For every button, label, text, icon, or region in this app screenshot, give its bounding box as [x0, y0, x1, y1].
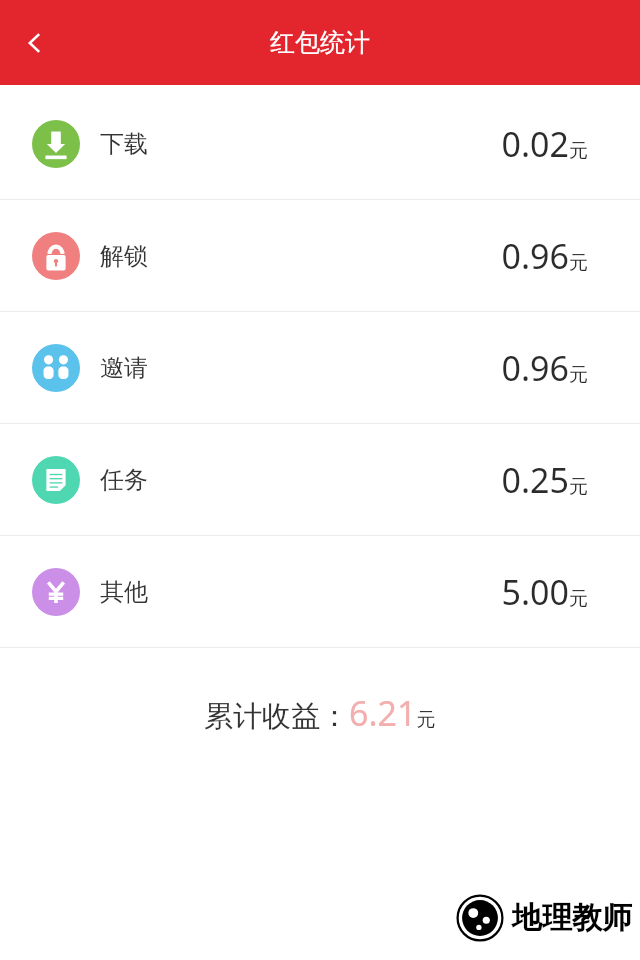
- button[interactable]: 其他: [0, 536, 640, 647]
- staticText: 5.00元: [501, 569, 588, 615]
- staticText: 0.96元: [501, 345, 588, 391]
- staticText: 邀请: [100, 353, 148, 383]
- staticText: 解锁: [100, 241, 148, 271]
- button[interactable]: Back: [0, 0, 70, 85]
- button[interactable]: 下载: [0, 88, 640, 199]
- button[interactable]: 解锁: [0, 200, 640, 311]
- staticText: 0.02元: [501, 121, 588, 167]
- staticText: 下载: [100, 129, 148, 159]
- staticText: 其他: [100, 577, 148, 607]
- staticText: 0.96元: [501, 233, 588, 279]
- staticText: 累计收益：6.21元: [204, 690, 436, 736]
- staticText: 任务: [100, 465, 148, 495]
- staticText: 0.25元: [501, 457, 588, 503]
- staticText: 红包统计: [270, 27, 370, 58]
- button[interactable]: 任务: [0, 424, 640, 535]
- staticText: 地理教师: [512, 899, 632, 937]
- button[interactable]: 邀请: [0, 312, 640, 423]
